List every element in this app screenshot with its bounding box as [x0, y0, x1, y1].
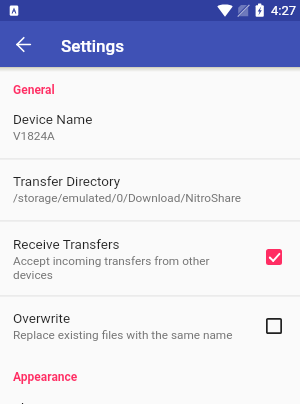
staticText: Transfer Directory — [13, 173, 121, 189]
staticText: 4:27 — [271, 3, 297, 18]
staticText: Overwrite — [13, 310, 71, 326]
staticText: V1824A — [13, 129, 55, 143]
staticText: Device Name — [13, 111, 93, 127]
button[interactable]: Transfer Directory — [0, 160, 300, 220]
staticText: Theme — [13, 400, 55, 404]
button[interactable]: Receive Transfers — [0, 222, 300, 295]
staticText: /storage/emulated/0/Download/NitroShare — [13, 191, 242, 205]
button[interactable]: Overwrite — [0, 297, 300, 351]
button[interactable]: Device Name — [0, 97, 300, 158]
button[interactable]: Back — [6, 27, 40, 61]
staticText: Settings — [61, 36, 124, 56]
staticText: Replace existing files with the same nam… — [13, 328, 233, 342]
staticText: General — [13, 83, 55, 97]
staticText: Appearance — [13, 370, 78, 384]
staticText: Receive Transfers — [13, 236, 120, 252]
staticText: Accept incoming transfers from other dev… — [13, 254, 244, 282]
